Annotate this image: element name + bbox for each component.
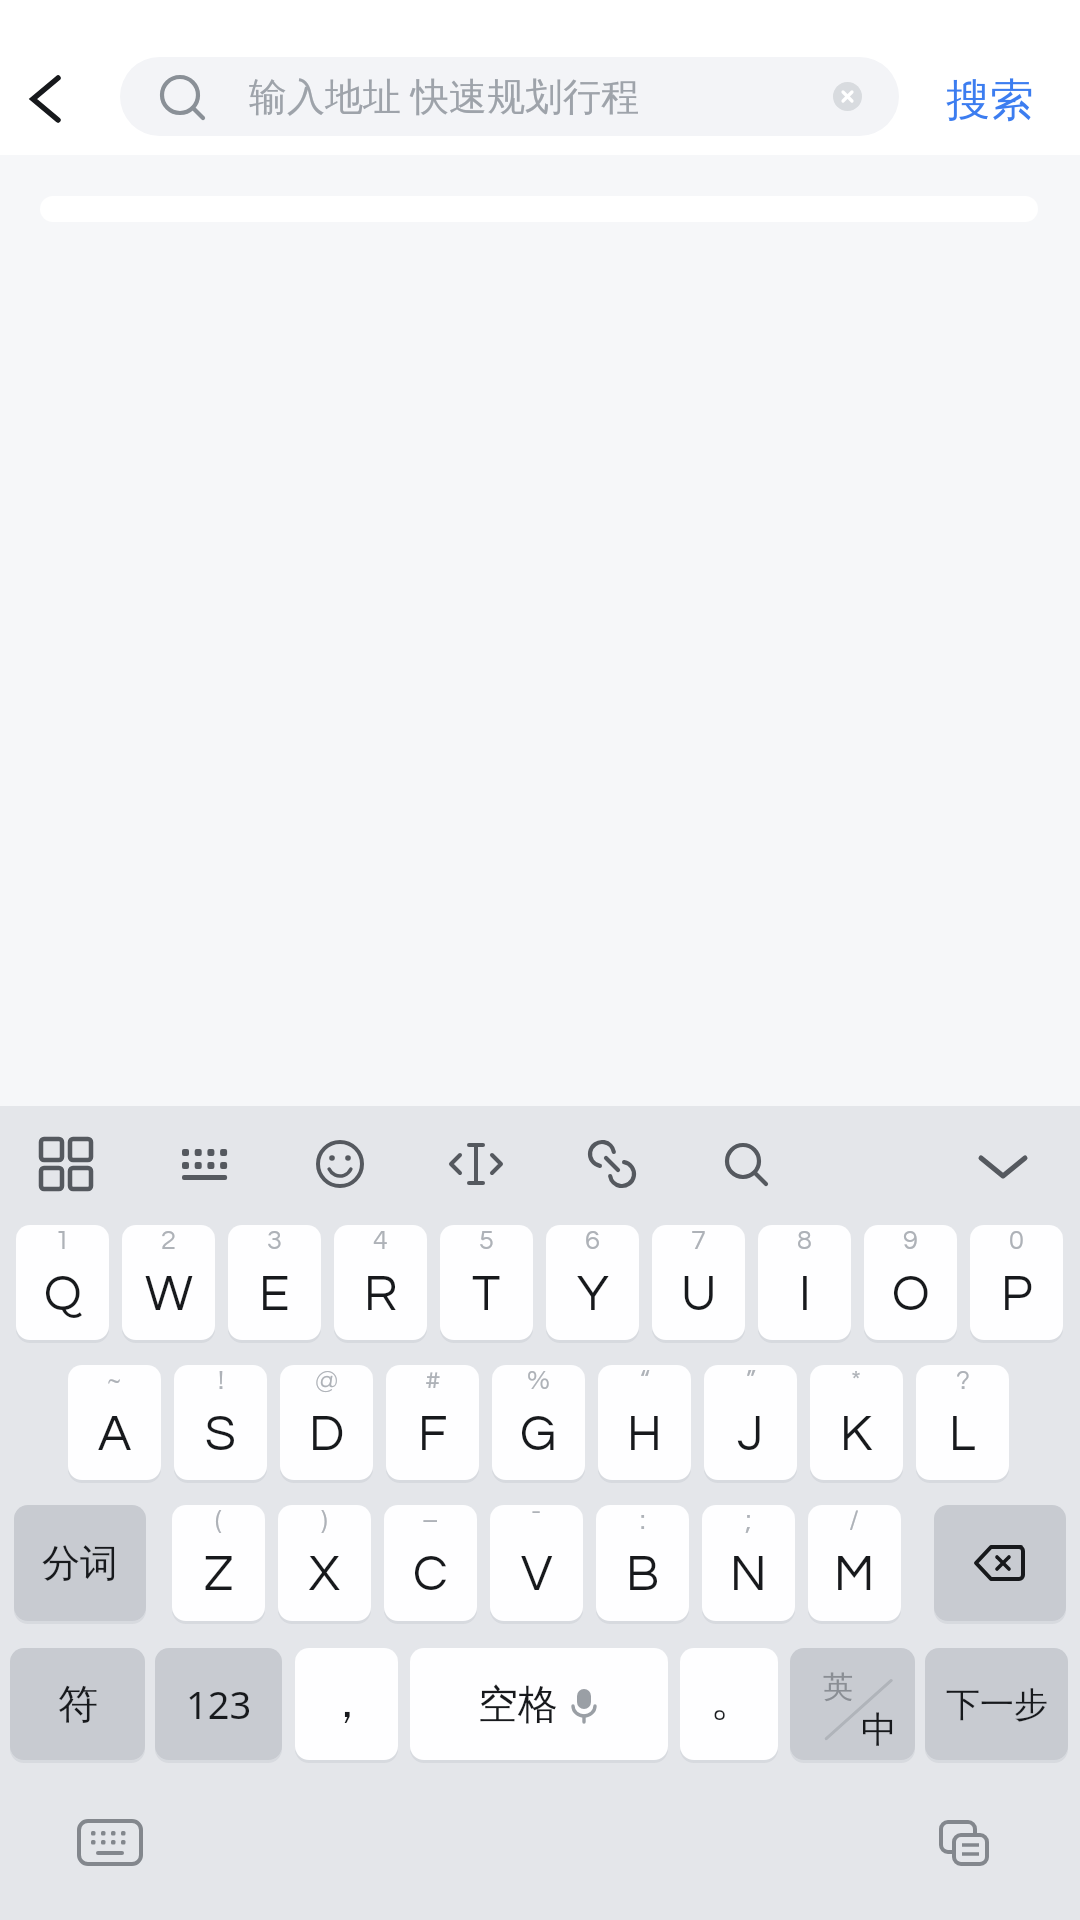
staticText: 空格 [478, 1679, 558, 1729]
staticText: 4 [373, 1227, 388, 1255]
staticText: S [205, 1409, 236, 1461]
staticText: 输入地址 快速规划行程 [249, 69, 639, 121]
staticText: B [626, 1549, 660, 1601]
button[interactable]: : [596, 1505, 689, 1621]
staticText: “ [640, 1367, 650, 1395]
button[interactable]: ， [295, 1648, 398, 1760]
staticText: 7 [691, 1227, 706, 1255]
staticText: % [527, 1367, 550, 1395]
staticText: ) [321, 1507, 328, 1535]
staticText: M [834, 1549, 875, 1601]
staticText: 8 [797, 1227, 812, 1255]
button[interactable]: ! [174, 1365, 267, 1480]
button[interactable]: 5 [440, 1225, 533, 1340]
staticText: E [259, 1269, 290, 1321]
button[interactable]: ) [278, 1505, 371, 1621]
button[interactable] [312, 1136, 368, 1192]
staticText: W [145, 1269, 193, 1321]
button[interactable] [177, 1136, 233, 1192]
button[interactable]: 英 [790, 1648, 915, 1760]
staticText: U [681, 1269, 717, 1321]
button[interactable]: 1 [16, 1225, 109, 1340]
staticText: Z [204, 1549, 234, 1601]
staticText: F [418, 1409, 448, 1461]
staticText: O [892, 1269, 930, 1321]
button[interactable]: / [808, 1505, 901, 1621]
button[interactable]: 分词 [14, 1505, 146, 1621]
button[interactable]: ( [172, 1505, 265, 1621]
staticText: Q [44, 1269, 82, 1321]
staticText: 符 [58, 1679, 98, 1729]
staticText: L [949, 1409, 976, 1461]
staticText: A [98, 1409, 132, 1461]
button[interactable]: 6 [546, 1225, 639, 1340]
button[interactable] [833, 82, 862, 111]
button[interactable] [448, 1136, 504, 1192]
button[interactable]: ~ [68, 1365, 161, 1480]
button[interactable] [584, 1136, 640, 1192]
button[interactable]: 9 [864, 1225, 957, 1340]
button[interactable]: ? [916, 1365, 1009, 1480]
button[interactable]: 3 [228, 1225, 321, 1340]
button[interactable] [38, 1136, 94, 1192]
button[interactable]: 2 [122, 1225, 215, 1340]
staticText: ~ [107, 1367, 122, 1395]
staticText: C [413, 1549, 448, 1601]
staticText: 0 [1009, 1227, 1024, 1255]
staticText: D [309, 1409, 345, 1461]
staticText: 中 [861, 1707, 897, 1752]
button[interactable]: 下一步 [925, 1648, 1068, 1760]
button[interactable] [78, 1810, 142, 1874]
button[interactable]: 输入地址 快速规划行程 [120, 57, 899, 136]
button[interactable]: 。 [680, 1648, 778, 1760]
button[interactable]: 4 [334, 1225, 427, 1340]
staticText: ! [218, 1367, 224, 1395]
staticText: 。 [710, 1671, 756, 1729]
button[interactable]: ; [702, 1505, 795, 1621]
button[interactable]: “ [598, 1365, 691, 1480]
staticText: J [737, 1409, 764, 1461]
staticText: 1 [55, 1227, 70, 1255]
button[interactable]: 搜索 [930, 68, 1050, 132]
button[interactable] [20, 75, 70, 125]
staticText: I [799, 1269, 811, 1321]
button[interactable]: 0 [970, 1225, 1063, 1340]
staticText: H [627, 1409, 662, 1461]
staticText: # [425, 1367, 441, 1395]
staticText: 9 [903, 1227, 918, 1255]
button[interactable] [718, 1136, 774, 1192]
staticText: P [1001, 1269, 1033, 1321]
staticText: * [851, 1367, 862, 1395]
staticText: 6 [585, 1227, 600, 1255]
staticText: : [640, 1507, 646, 1535]
button[interactable] [934, 1505, 1066, 1621]
staticText: 分词 [42, 1539, 118, 1587]
button[interactable]: 123 [155, 1648, 282, 1760]
button[interactable]: # [386, 1365, 479, 1480]
staticText: 5 [479, 1227, 494, 1255]
button[interactable] [975, 1138, 1031, 1194]
staticText: 3 [267, 1227, 282, 1255]
button[interactable]: * [810, 1365, 903, 1480]
button[interactable]: ” [704, 1365, 797, 1480]
staticText: ? [956, 1367, 970, 1395]
staticText: – [422, 1507, 439, 1535]
staticText: R [364, 1269, 398, 1321]
staticText: X [309, 1549, 340, 1601]
staticText: 123 [186, 1678, 252, 1730]
button[interactable]: – [384, 1505, 477, 1621]
staticText: K [840, 1409, 873, 1461]
staticText: N [730, 1549, 767, 1601]
staticText: ( [215, 1507, 222, 1535]
button[interactable] [933, 1810, 997, 1874]
button[interactable]: ˉ [490, 1505, 583, 1621]
button[interactable]: 7 [652, 1225, 745, 1340]
button[interactable]: 8 [758, 1225, 851, 1340]
button[interactable]: 空格 [410, 1648, 668, 1760]
button[interactable]: % [492, 1365, 585, 1480]
button[interactable]: 符 [10, 1648, 145, 1760]
staticText: @ [315, 1367, 339, 1395]
button[interactable]: @ [280, 1365, 373, 1480]
staticText: 下一步 [946, 1683, 1048, 1726]
staticText: 英 [823, 1668, 853, 1706]
